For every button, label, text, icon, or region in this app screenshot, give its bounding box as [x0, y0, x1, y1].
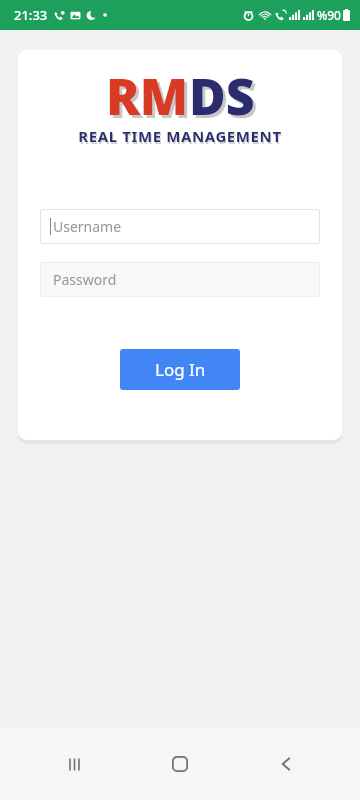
button[interactable]: Username	[40, 209, 320, 244]
staticText: %90	[317, 7, 341, 23]
button[interactable]: Back	[254, 732, 318, 796]
staticText: DS	[192, 65, 258, 121]
staticText: Password	[53, 270, 117, 289]
staticText: 21:33	[14, 6, 48, 24]
button[interactable]: Log In	[120, 349, 240, 390]
staticText: RM	[109, 65, 192, 121]
staticText: REAL TIME MANAGEMENT	[19, 128, 342, 148]
button[interactable]: Recents	[42, 732, 106, 796]
staticText: Log In	[155, 358, 206, 381]
button[interactable]: Password	[40, 262, 320, 297]
staticText: REAL TIME MANAGEMENT	[18, 126, 342, 146]
button[interactable]: Home	[148, 732, 212, 796]
staticText: DS	[189, 62, 255, 118]
staticText: RM	[106, 62, 189, 118]
staticText: Username	[53, 217, 122, 236]
